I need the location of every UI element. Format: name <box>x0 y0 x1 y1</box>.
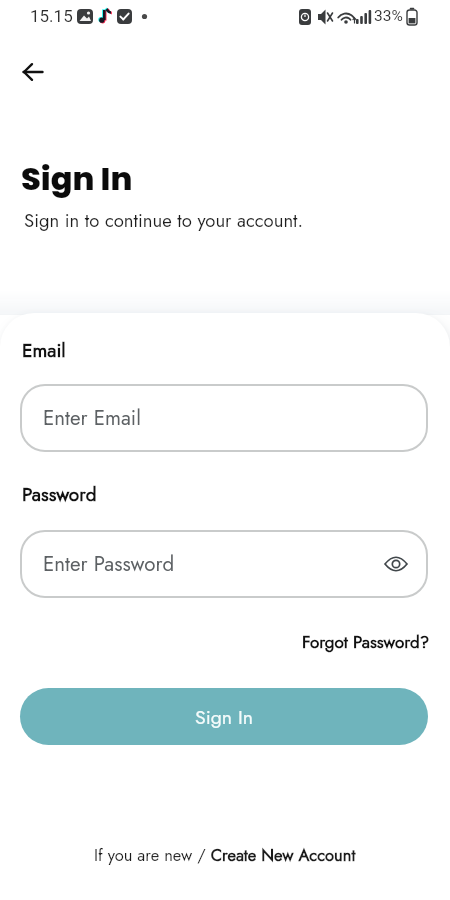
button[interactable] <box>10 50 54 94</box>
staticText: Email <box>22 337 66 364</box>
staticText: Enter Password <box>43 549 175 579</box>
button[interactable]: Enter Password <box>20 530 428 598</box>
staticText: Forgot Password? <box>302 630 430 655</box>
staticText: Sign In <box>195 703 253 731</box>
staticText: If you are new / Create New Account <box>94 843 356 867</box>
staticText: 33% <box>374 7 403 25</box>
button[interactable]: If you are new / Create New Account <box>0 840 450 870</box>
button[interactable]: Enter Email <box>20 384 428 452</box>
button[interactable]: Sign In <box>20 688 428 745</box>
staticText: 15.15 <box>30 6 73 26</box>
staticText: Sign in to continue to your account. <box>24 207 304 234</box>
button[interactable] <box>382 550 410 578</box>
staticText: Sign In <box>21 156 133 201</box>
staticText: Enter Email <box>43 403 141 433</box>
staticText: Password <box>22 481 97 508</box>
button[interactable]: Forgot Password? <box>270 627 430 657</box>
